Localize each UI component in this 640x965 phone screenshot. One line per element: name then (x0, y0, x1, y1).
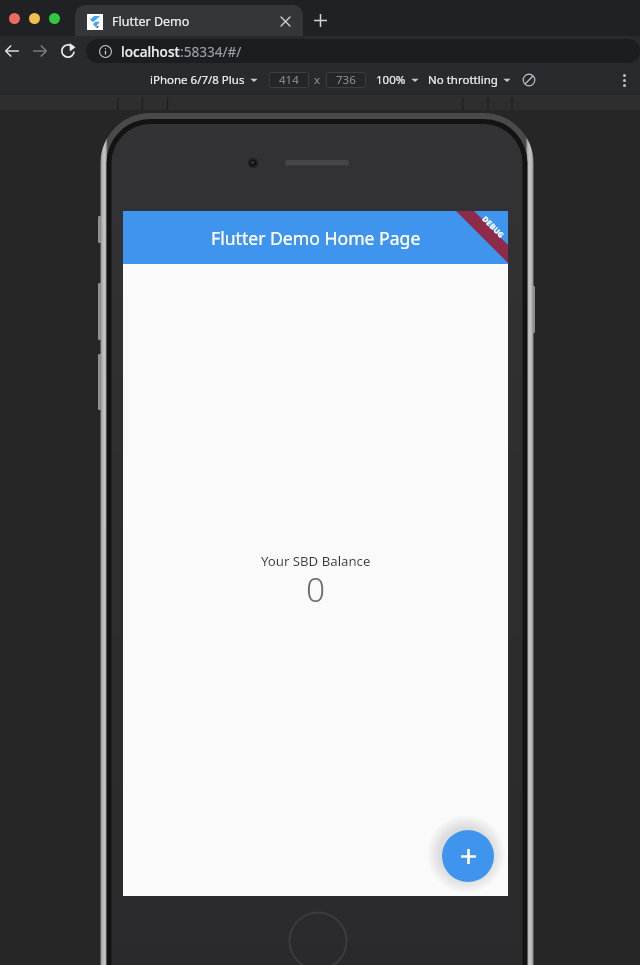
button[interactable]: New tab (307, 7, 333, 33)
staticText: 736 (336, 72, 356, 88)
button[interactable]: Forward (28, 39, 52, 63)
staticText: Flutter Demo Home Page (211, 226, 421, 250)
staticText: 100% (376, 72, 406, 88)
button[interactable]: Reload (56, 39, 80, 63)
staticText: Your SBD Balance (261, 552, 371, 570)
staticText: :58334/#/ (180, 42, 242, 61)
staticText: No throttling (428, 72, 498, 88)
button[interactable]: No throttling (428, 72, 511, 88)
staticText: 414 (279, 72, 299, 88)
button[interactable]: Increment (442, 830, 494, 882)
button[interactable]: Rotate (519, 70, 539, 90)
button[interactable]: More options (613, 69, 635, 91)
button[interactable]: 100% (376, 72, 419, 88)
staticText: iPhone 6/7/8 Plus (150, 72, 245, 88)
button[interactable]: 414 (269, 72, 309, 88)
staticText: x (314, 72, 321, 88)
button[interactable]: Back (0, 39, 24, 63)
button[interactable]: Flutter Demo (75, 5, 303, 37)
button[interactable]: Close tab (275, 11, 295, 31)
button[interactable]: 736 (326, 72, 366, 88)
button[interactable]: localhost (86, 39, 640, 63)
button[interactable]: iPhone 6/7/8 Plus (150, 72, 258, 88)
staticText: 0 (306, 566, 326, 612)
staticText: DEBUG (480, 214, 507, 240)
button[interactable] (29, 13, 40, 24)
button[interactable] (49, 13, 60, 24)
button[interactable] (9, 13, 20, 24)
staticText: localhost (121, 42, 180, 61)
staticText: Flutter Demo (112, 13, 190, 30)
